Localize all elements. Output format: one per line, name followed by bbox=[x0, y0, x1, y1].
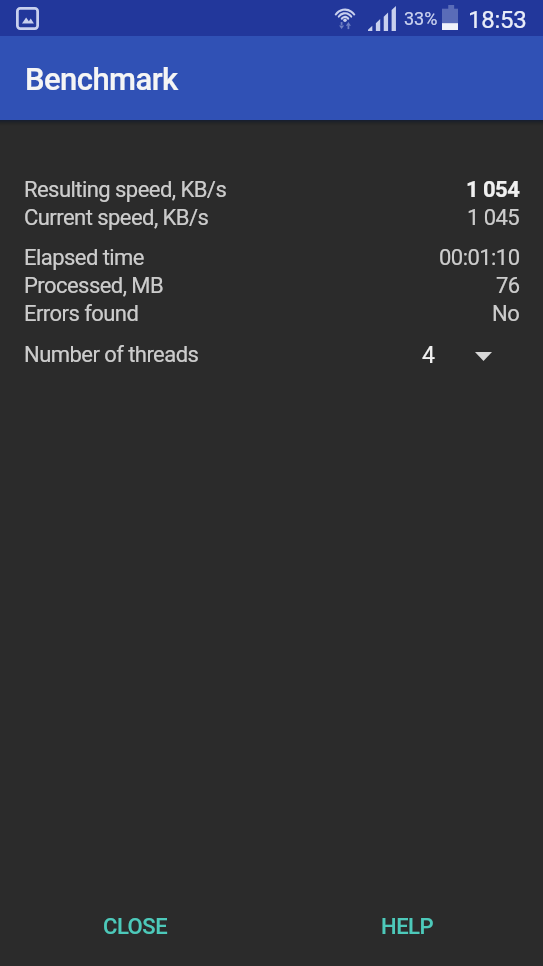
staticText: Benchmark bbox=[25, 61, 178, 97]
button[interactable]: HELP bbox=[271, 896, 543, 958]
staticText: 4 bbox=[422, 342, 435, 369]
button[interactable]: CLOSE bbox=[0, 896, 271, 958]
staticText: CLOSE bbox=[103, 914, 168, 940]
staticText: 76 bbox=[496, 273, 520, 299]
staticText: No bbox=[492, 301, 520, 327]
staticText: Resulting speed, KB/s bbox=[24, 177, 227, 203]
staticText: 1 045 bbox=[467, 205, 520, 231]
staticText: 33% bbox=[404, 8, 438, 29]
button[interactable]: 4 bbox=[422, 342, 492, 369]
other: Screenshot bbox=[16, 7, 39, 30]
staticText: 18:53 bbox=[468, 6, 527, 34]
staticText: 00:01:10 bbox=[439, 245, 520, 271]
staticText: HELP bbox=[381, 914, 434, 940]
staticText: Current speed, KB/s bbox=[24, 205, 209, 231]
staticText: 1 054 bbox=[466, 177, 520, 203]
staticText: Number of threads bbox=[24, 342, 199, 368]
staticText: Errors found bbox=[24, 301, 139, 327]
staticText: Elapsed time bbox=[24, 245, 144, 271]
staticText: Processed, MB bbox=[24, 273, 164, 299]
